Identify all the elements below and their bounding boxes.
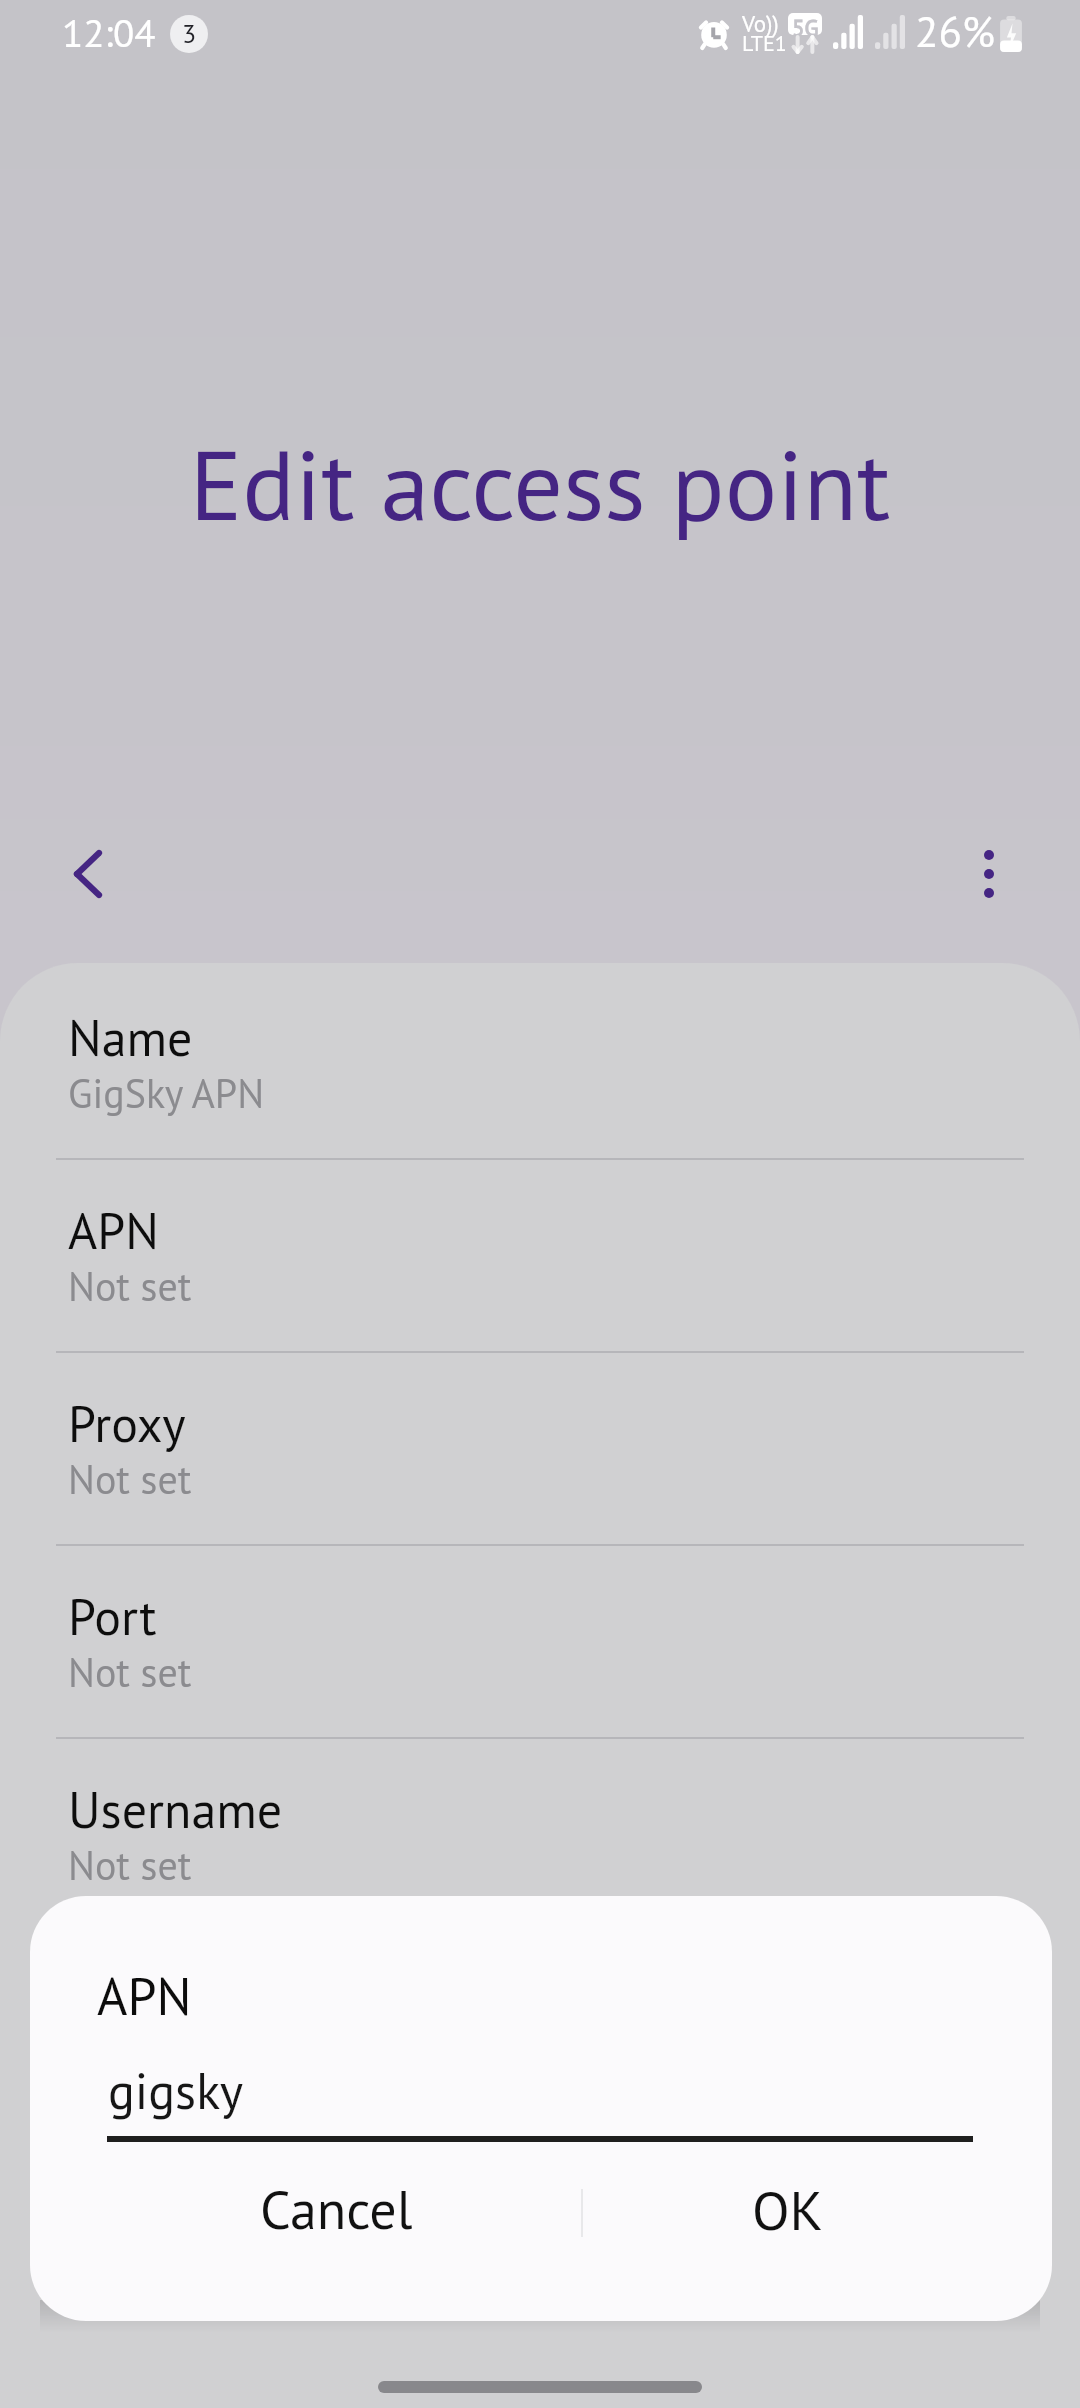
button[interactable]: Navigate up xyxy=(38,824,138,924)
button[interactable]: Username xyxy=(0,1738,1080,1931)
staticText: Edit access point xyxy=(0,420,1080,547)
staticText: Vo)) xyxy=(742,9,779,39)
button[interactable]: APN xyxy=(0,1159,1080,1352)
staticText: GigSky APN xyxy=(68,1067,265,1119)
staticText: Cancel xyxy=(260,2174,413,2244)
staticText: 12:04 xyxy=(62,7,156,57)
staticText: APN xyxy=(97,1962,192,2029)
staticText: Not set xyxy=(68,1839,192,1891)
button[interactable]: Port xyxy=(0,1545,1080,1738)
staticText: LTE1 xyxy=(742,29,787,57)
button[interactable]: More options xyxy=(939,824,1039,924)
staticText: Not set xyxy=(68,1453,192,1505)
staticText: Name xyxy=(68,1005,193,1070)
staticText: 26% xyxy=(915,3,996,59)
staticText: OK xyxy=(752,2174,824,2245)
staticText: Not set xyxy=(68,1646,192,1698)
button[interactable]: Cancel xyxy=(90,2158,582,2278)
staticText: 5G xyxy=(792,13,819,35)
staticText: Username xyxy=(68,1777,283,1842)
button[interactable]: OK xyxy=(583,2158,993,2278)
staticText: APN xyxy=(68,1198,159,1263)
staticText: Not set xyxy=(68,1260,192,1312)
button[interactable]: Proxy xyxy=(0,1352,1080,1545)
staticText: Port xyxy=(68,1584,157,1649)
staticText: 3 xyxy=(182,17,197,51)
staticText: Proxy xyxy=(68,1391,186,1456)
staticText: gigsky xyxy=(108,2058,244,2123)
button[interactable]: Name xyxy=(0,966,1080,1159)
